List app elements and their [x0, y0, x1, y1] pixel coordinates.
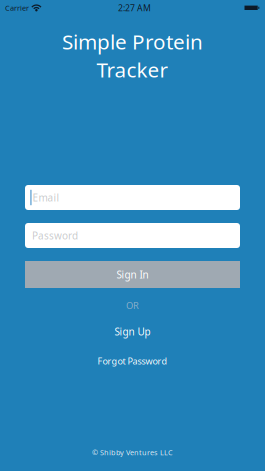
button[interactable]: Email	[25, 185, 240, 210]
staticText: Carrier	[5, 3, 29, 13]
staticText: Sign Up	[114, 325, 150, 338]
staticText: Sign In	[116, 268, 148, 281]
staticText: Email	[32, 191, 59, 204]
staticText: Simple Protein	[62, 27, 203, 55]
staticText: Forgot Password	[97, 355, 167, 367]
button[interactable]: Sign In	[25, 261, 240, 288]
staticText: Password	[32, 229, 78, 242]
button[interactable]: Forgot Password	[97, 355, 167, 367]
button[interactable]: Sign Up	[114, 325, 150, 338]
staticText: © Shibby Ventures LLC	[92, 447, 173, 457]
staticText: Tracker	[96, 55, 168, 83]
staticText: OR	[126, 299, 139, 312]
staticText: 2:27 AM	[118, 2, 151, 14]
button[interactable]: Password	[25, 223, 240, 248]
